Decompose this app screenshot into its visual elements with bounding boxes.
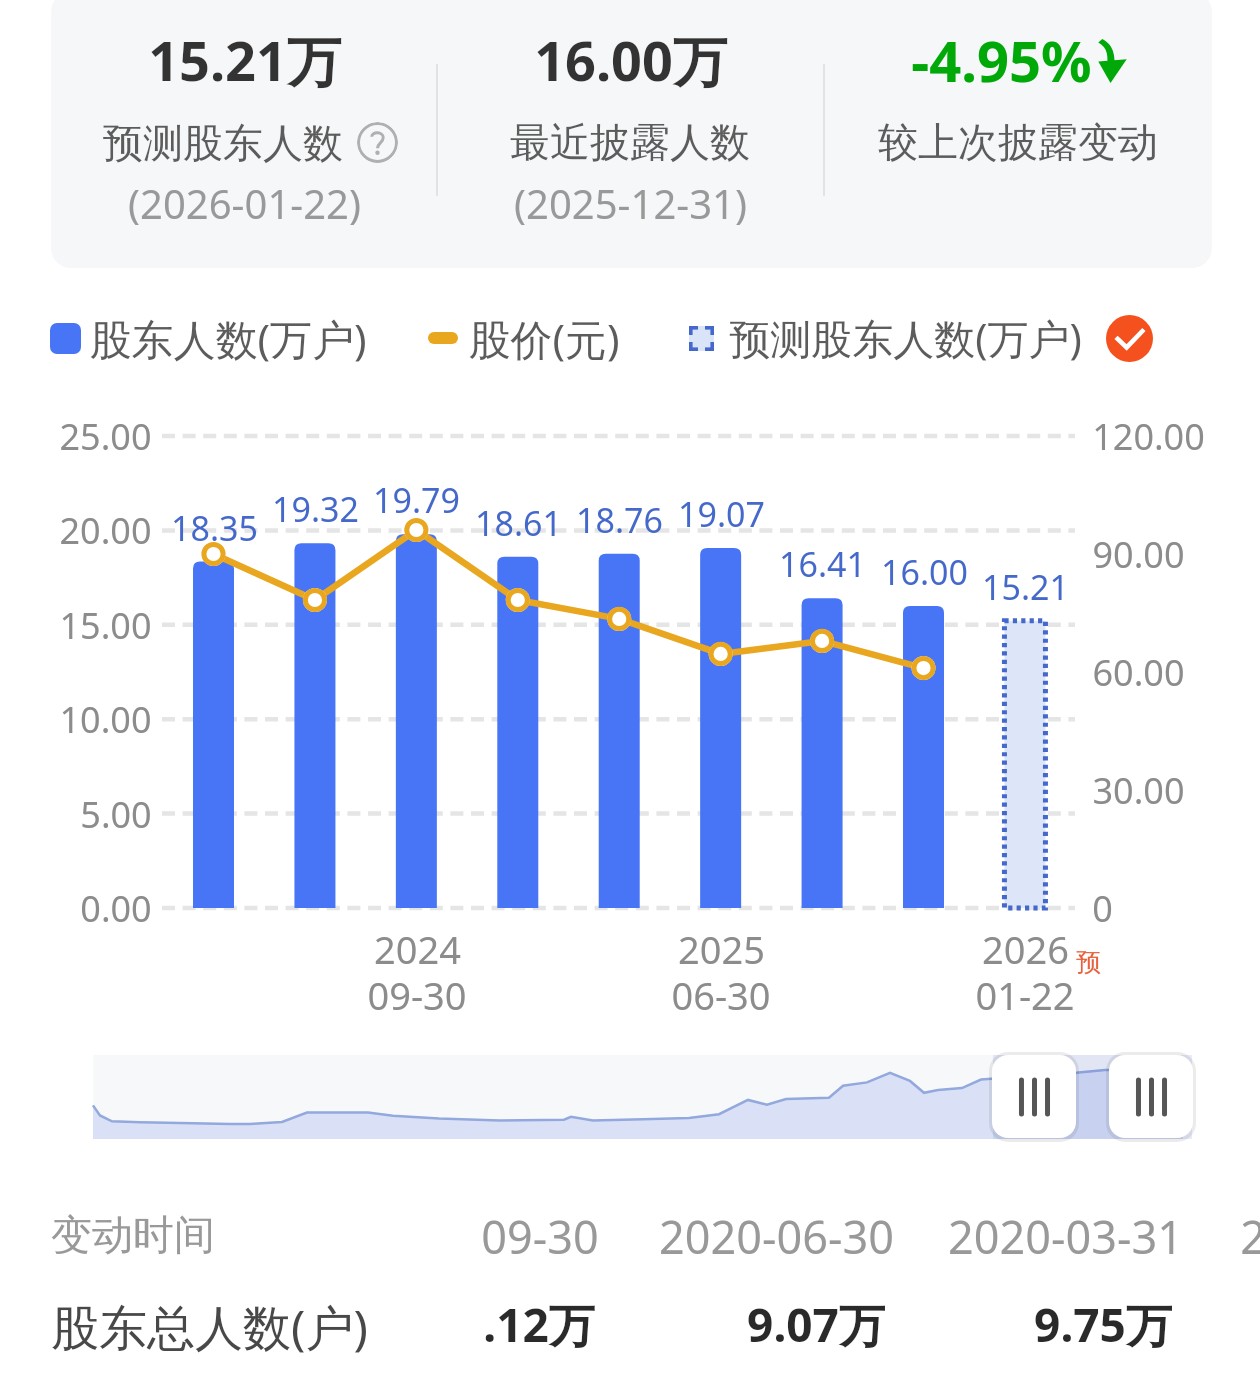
staticText: 16.00 <box>881 549 968 595</box>
button[interactable]: Range handle <box>1109 1055 1193 1138</box>
button[interactable]: What is predicted shareholder count? <box>357 122 398 163</box>
staticText: 120.00 <box>1092 412 1205 461</box>
staticText: (2026-01-22) <box>128 176 361 230</box>
staticText: 16.00万 <box>534 23 727 97</box>
staticText: 06-30 <box>671 969 771 1021</box>
staticText: 2020-03-31 <box>948 1206 1183 1262</box>
button[interactable]: 预测股东人数(万户) <box>689 310 1082 366</box>
staticText: 10.00 <box>59 695 152 744</box>
staticText: 09-30 <box>367 969 467 1021</box>
staticText: 预测股东人数 <box>103 118 343 166</box>
staticText: 2024 <box>374 923 461 975</box>
button[interactable]: 2020-03-31 <box>893 1206 1183 1262</box>
button[interactable]: 09-30 <box>309 1206 599 1262</box>
staticText: 2020-06-30 <box>659 1206 894 1262</box>
staticText: 15.00 <box>59 601 152 650</box>
button[interactable]: 股东总人数(户) <box>51 1294 368 1354</box>
staticText: 01-22 <box>975 969 1075 1021</box>
button[interactable]: 9.07万 <box>595 1293 885 1355</box>
staticText: 9.75万 <box>1034 1293 1172 1355</box>
staticText: 预测股东人数(万户) <box>729 310 1082 366</box>
staticText: 60.00 <box>1092 648 1185 697</box>
staticText: 预 <box>1076 947 1101 978</box>
button[interactable]: 股价(元) <box>428 310 620 366</box>
staticText: 最近披露人数 <box>510 117 750 167</box>
button[interactable] <box>51 0 436 268</box>
staticText: 30.00 <box>1092 766 1185 815</box>
staticText: 较上次披露变动 <box>878 117 1158 167</box>
button[interactable]: .12万 <box>305 1293 595 1355</box>
staticText: 2026 <box>982 923 1069 975</box>
staticText: 19.79 <box>373 477 460 523</box>
staticText: 5.00 <box>80 790 152 839</box>
button[interactable]: 变动时间 <box>51 1210 215 1264</box>
staticText: 18.76 <box>576 497 663 543</box>
staticText: -4.95% <box>911 22 1092 98</box>
staticText: 25.00 <box>59 412 152 461</box>
button[interactable]: 9.75万 <box>882 1293 1172 1355</box>
staticText: 15.21 <box>982 564 1069 610</box>
staticText: 股东人数(万户) <box>89 310 367 366</box>
staticText: 18.61 <box>475 500 562 546</box>
button[interactable] <box>825 0 1212 268</box>
staticText: 0 <box>1092 884 1113 933</box>
staticText: 15.21万 <box>148 23 341 97</box>
staticText: 股价(元) <box>468 310 620 366</box>
staticText: 09-30 <box>481 1206 599 1262</box>
staticText: 0.00 <box>80 884 152 933</box>
staticText: (2025-12-31) <box>514 176 747 230</box>
staticText: 2025 <box>678 923 765 975</box>
staticText: 19.07 <box>678 491 765 537</box>
button[interactable]: Toggle forecast series <box>1106 315 1153 362</box>
staticText: 90.00 <box>1092 530 1185 579</box>
staticText: 股东总人数(户) <box>51 1294 368 1354</box>
staticText: 变动时间 <box>51 1210 215 1262</box>
button[interactable]: 2 <box>976 1206 1260 1262</box>
staticText: 18.35 <box>171 505 258 551</box>
staticText: 19.32 <box>272 486 359 532</box>
staticText: 20.00 <box>59 506 152 555</box>
staticText: 2 <box>1240 1206 1260 1262</box>
staticText: 16.41 <box>779 541 866 587</box>
button[interactable]: Range handle <box>992 1055 1076 1138</box>
button[interactable]: 股东人数(万户) <box>50 310 367 366</box>
staticText: .12万 <box>483 1293 595 1355</box>
button[interactable]: 2020-06-30 <box>604 1206 894 1262</box>
staticText: 9.07万 <box>747 1293 885 1355</box>
button[interactable] <box>438 0 823 268</box>
